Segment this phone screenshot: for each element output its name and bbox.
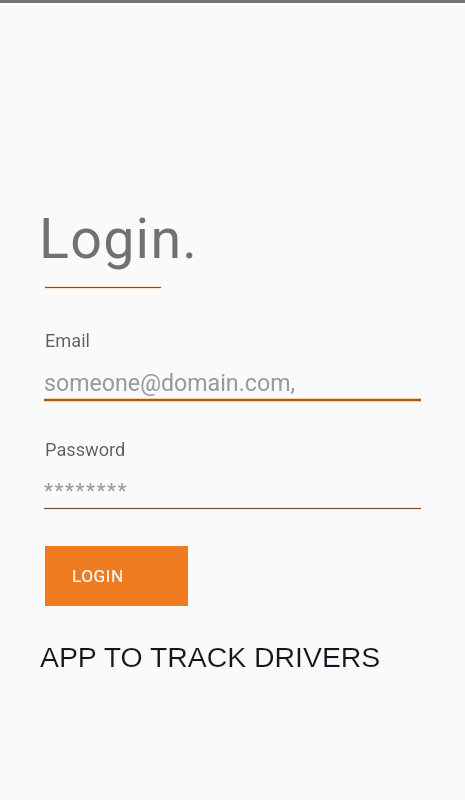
button[interactable]: Password (44, 435, 421, 510)
staticText: Login. (39, 206, 199, 271)
staticText: Password (45, 439, 126, 460)
staticText: APP TO TRACK DRIVERS (40, 641, 381, 673)
staticText: ******** (44, 479, 128, 504)
staticText: someone@domain.com, (44, 369, 296, 396)
staticText: Email (45, 330, 91, 351)
staticText: LOGIN (72, 566, 124, 586)
button[interactable]: LOGIN (45, 546, 188, 606)
button[interactable]: Email (44, 326, 421, 401)
